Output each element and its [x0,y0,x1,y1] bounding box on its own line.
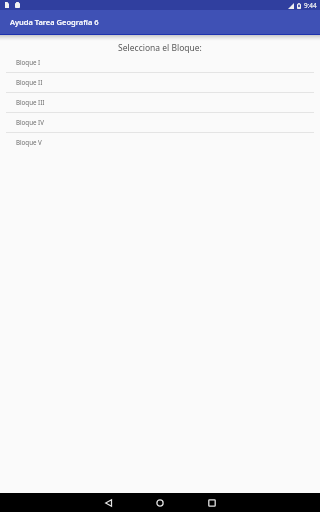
button[interactable]: Bloque V [0,133,320,153]
button[interactable]: Bloque I [0,53,320,73]
staticText: Bloque III [16,98,45,106]
button[interactable]: Recent apps [202,493,221,512]
staticText: Selecciona el Bloque: [0,42,320,54]
button[interactable]: Bloque IV [0,113,320,133]
staticText: Bloque IV [16,118,44,126]
button[interactable]: Bloque II [0,73,320,93]
staticText: 9:44 [304,1,317,10]
button[interactable]: Bloque III [0,93,320,113]
staticText: Bloque V [16,138,42,146]
staticText: Ayuda Tarea Geografía 6 [10,17,99,27]
staticText: Bloque II [16,78,43,86]
staticText: Bloque I [16,58,41,66]
button[interactable]: Back [99,493,118,512]
button[interactable]: Home [150,493,169,512]
